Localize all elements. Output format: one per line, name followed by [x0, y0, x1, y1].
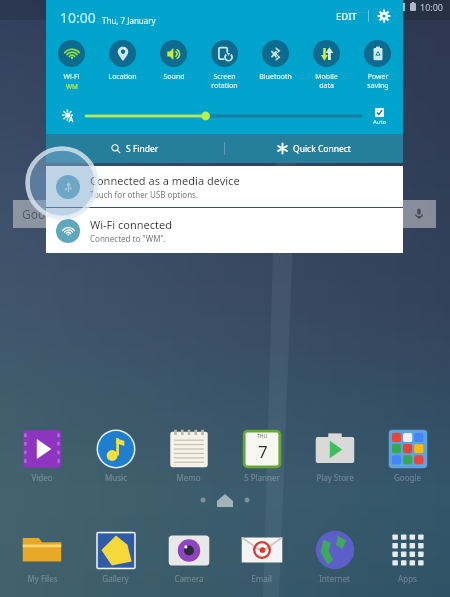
button[interactable]: Google: [13, 200, 436, 228]
staticText: S Planner: [244, 472, 280, 483]
button[interactable]: Google: [371, 429, 444, 483]
button[interactable]: Memo: [152, 429, 225, 483]
button[interactable]: Auto: [368, 108, 391, 126]
staticText: Memo: [176, 472, 201, 483]
button[interactable]: Wi-Fi: [46, 40, 97, 91]
button[interactable]: Apps: [371, 530, 444, 584]
button[interactable]: Brightness: [86, 109, 361, 123]
button[interactable]: Email: [225, 530, 298, 584]
staticText: Google: [394, 472, 421, 483]
staticText: THU: [257, 433, 268, 440]
button[interactable]: Connected as a media device: [46, 166, 403, 207]
staticText: Connected as a media device: [90, 173, 240, 188]
staticText: Wi-Fi connected: [90, 217, 172, 232]
button[interactable]: Screen rotation: [199, 40, 250, 90]
staticText: Power saving: [367, 72, 389, 90]
staticText: Bluetooth: [259, 72, 292, 82]
button[interactable]: THU: [225, 429, 298, 483]
staticText: Gallery: [102, 573, 129, 584]
staticText: Play Store: [316, 472, 354, 483]
staticText: Auto: [373, 118, 387, 126]
staticText: Connected to "WM".: [90, 233, 166, 244]
button[interactable]: EDIT: [332, 6, 361, 27]
staticText: Mobile data: [315, 72, 338, 90]
button[interactable]: Video: [5, 429, 79, 483]
button[interactable]: Gallery: [79, 530, 152, 584]
button[interactable]: Play Store: [298, 429, 371, 483]
button[interactable]: Settings: [377, 9, 391, 23]
staticText: 10:00: [420, 1, 444, 12]
button[interactable]: Sound: [148, 40, 199, 82]
button[interactable]: Power saving: [352, 40, 403, 90]
staticText: Music: [105, 472, 127, 483]
staticText: 10:00: [60, 8, 96, 27]
staticText: 7: [258, 440, 268, 463]
button[interactable]: My Files: [5, 530, 79, 584]
button[interactable]: Music: [79, 429, 152, 483]
staticText: Sound: [163, 72, 185, 82]
staticText: S Finder: [126, 143, 159, 155]
staticText: Email: [251, 573, 272, 584]
button[interactable]: Bluetooth: [250, 40, 301, 82]
staticText: Google: [22, 206, 63, 222]
staticText: EDIT: [336, 10, 357, 23]
button[interactable]: Wi-Fi connected: [46, 208, 403, 253]
staticText: Touch for other USB options.: [90, 189, 199, 200]
staticText: WM: [66, 82, 78, 91]
button[interactable]: Mobile data: [301, 40, 352, 90]
staticText: Internet: [319, 573, 350, 584]
staticText: Apps: [398, 573, 417, 584]
button[interactable]: Location: [97, 40, 148, 82]
button[interactable]: Camera: [152, 530, 225, 584]
staticText: Video: [31, 472, 53, 483]
staticText: Location: [108, 72, 137, 82]
staticText: Quick Connect: [293, 143, 351, 155]
staticText: My Files: [27, 573, 58, 584]
staticText: Thu, 7 January: [102, 15, 156, 26]
staticText: Camera: [174, 573, 204, 584]
button[interactable]: S Finder: [46, 134, 224, 163]
button[interactable]: Quick Connect: [225, 134, 403, 163]
staticText: Wi-Fi: [63, 72, 80, 82]
staticText: Screen rotation: [211, 72, 238, 90]
button[interactable]: Internet: [298, 530, 371, 584]
button[interactable]: Auto brightness: [61, 109, 75, 123]
